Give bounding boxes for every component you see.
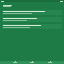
button[interactable] [2, 24, 62, 29]
button[interactable]: Home [12, 61, 18, 64]
staticText: Plants [30, 62, 34, 64]
staticText: Home [13, 62, 17, 64]
button[interactable] [2, 17, 62, 22]
staticText: Garden [3, 3, 12, 6]
button[interactable]: Profile [47, 61, 53, 64]
button[interactable] [2, 10, 62, 15]
staticText: Profile [48, 62, 52, 64]
button[interactable]: Plants [29, 61, 35, 64]
